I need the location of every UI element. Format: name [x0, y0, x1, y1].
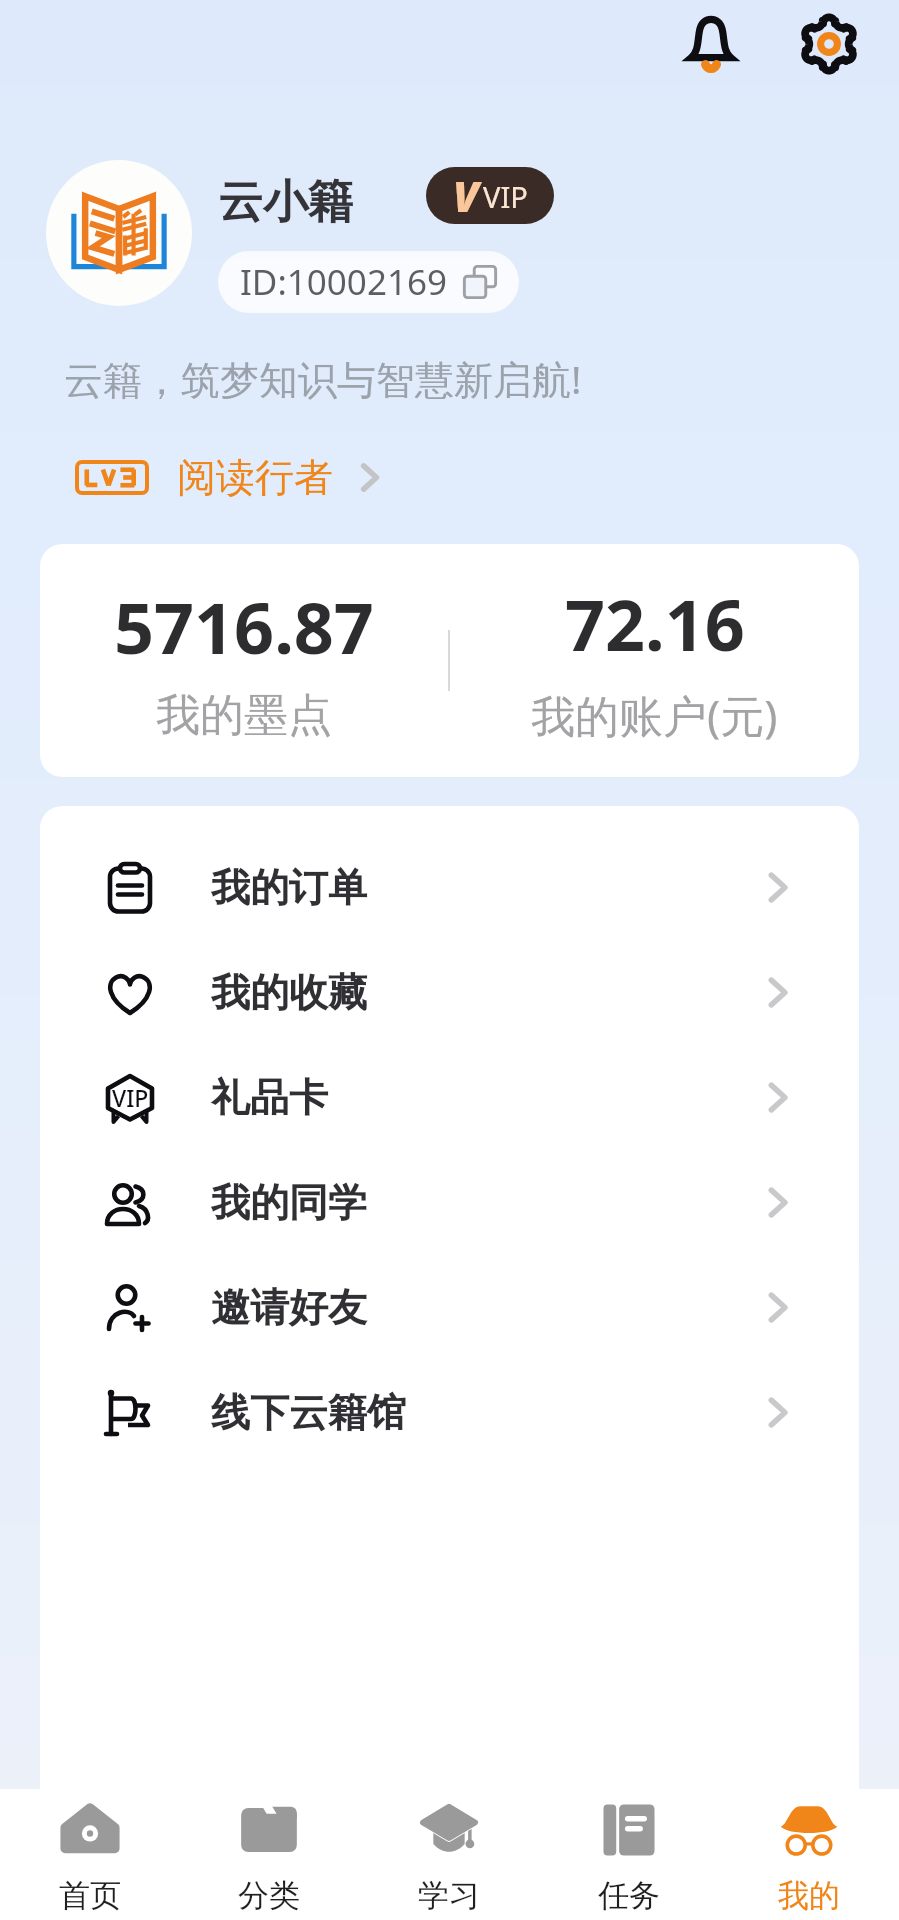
button[interactable]: VIP: [40, 1045, 859, 1150]
button[interactable]: Notifications: [673, 6, 749, 82]
staticText: 礼品卡: [211, 1073, 328, 1122]
staticText: 5716.87: [114, 579, 374, 674]
button[interactable]: 分类: [179, 1789, 359, 1920]
staticText: 云籍，筑梦知识与智慧新启航!: [64, 352, 582, 405]
button[interactable]: Avatar: [46, 160, 192, 306]
staticText: 我的订单: [211, 863, 367, 912]
button[interactable]: 任务: [539, 1789, 719, 1920]
button[interactable]: 线下云籍馆: [40, 1360, 859, 1465]
button[interactable]: Settings: [791, 6, 867, 82]
staticText: 线下云籍馆: [211, 1388, 406, 1437]
staticText: ID:10002169: [240, 258, 447, 306]
staticText: 72.16: [565, 576, 745, 671]
staticText: V: [453, 167, 479, 224]
staticText: 我的墨点: [156, 688, 332, 743]
button[interactable]: 学习: [359, 1789, 539, 1920]
button[interactable]: V: [426, 167, 554, 224]
button[interactable]: 我的同学: [40, 1150, 859, 1255]
staticText: 阅读行者: [177, 453, 333, 502]
staticText: VIP: [112, 1082, 149, 1113]
button[interactable]: 我的: [719, 1789, 899, 1920]
staticText: 我的: [778, 1876, 840, 1915]
staticText: 学习: [418, 1876, 480, 1915]
staticText: 任务: [598, 1876, 660, 1915]
button[interactable]: 我的订单: [40, 835, 859, 940]
staticText: 分类: [238, 1876, 300, 1915]
staticText: 邀请好友: [211, 1283, 367, 1332]
staticText: 我的账户(元): [531, 685, 778, 745]
button[interactable]: 邀请好友: [40, 1255, 859, 1360]
staticText: 我的收藏: [211, 968, 367, 1017]
button[interactable]: 首页: [0, 1789, 179, 1920]
staticText: 首页: [59, 1876, 121, 1915]
staticText: 我的同学: [211, 1178, 367, 1227]
button[interactable]: 阅读行者: [77, 453, 384, 502]
staticText: VIP: [483, 177, 528, 216]
button[interactable]: 我的收藏: [40, 940, 859, 1045]
button[interactable]: ID:10002169: [218, 251, 519, 313]
staticText: 云小籍: [218, 174, 353, 231]
